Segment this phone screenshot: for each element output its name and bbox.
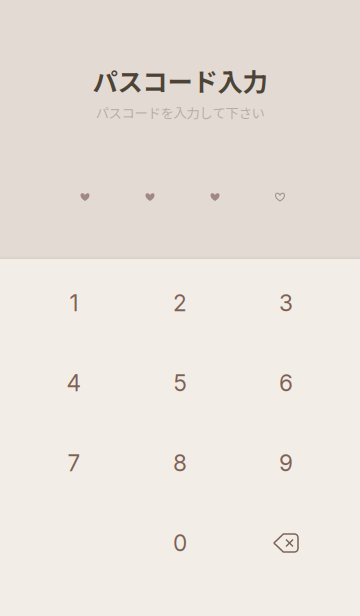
staticText: 4 [66, 369, 81, 397]
button[interactable]: 7 [21, 423, 127, 503]
button[interactable]: 6 [233, 343, 339, 423]
button[interactable]: 9 [233, 423, 339, 503]
staticText: 2 [173, 289, 187, 317]
staticText: 6 [279, 369, 293, 397]
button[interactable]: Delete [233, 503, 339, 583]
staticText: パスコード入力 [92, 62, 267, 99]
button[interactable]: 0 [127, 503, 233, 583]
staticText: 8 [173, 449, 187, 477]
button[interactable]: 5 [127, 343, 233, 423]
staticText: 3 [279, 289, 293, 317]
button[interactable]: 8 [127, 423, 233, 503]
button[interactable]: 1 [21, 263, 127, 343]
staticText: パスコードを入力して下さい [95, 103, 264, 122]
button[interactable]: 3 [233, 263, 339, 343]
staticText: 9 [279, 449, 293, 477]
button[interactable]: 2 [127, 263, 233, 343]
button[interactable]: 4 [21, 343, 127, 423]
staticText: 1 [69, 289, 78, 317]
staticText: 0 [173, 529, 187, 557]
staticText: 5 [173, 369, 186, 397]
staticText: 7 [67, 449, 80, 477]
